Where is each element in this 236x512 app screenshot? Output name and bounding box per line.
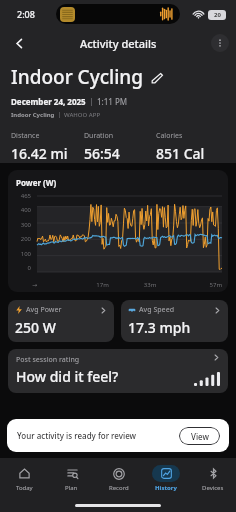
button[interactable]: History [142, 458, 189, 498]
staticText: Activity details [80, 36, 157, 51]
staticText: Post session rating [16, 355, 80, 365]
button[interactable]: Today [0, 458, 48, 498]
staticText: Distance [11, 131, 40, 141]
staticText: 2:08 [17, 8, 35, 20]
button[interactable]: Back [8, 32, 30, 54]
button[interactable]: Avg Power [8, 300, 114, 342]
staticText: Indoor Cycling [11, 111, 55, 119]
staticText: History [155, 484, 177, 492]
staticText: Devices [202, 484, 224, 492]
staticText: 33m [126, 281, 174, 289]
staticText: → [32, 281, 79, 288]
staticText: WAHOO APP [64, 111, 101, 119]
staticText: Power (W) [16, 177, 57, 188]
button[interactable]: Devices [189, 458, 236, 498]
button[interactable]: Edit title [148, 69, 165, 86]
staticText: Your activity is ready for review [17, 430, 137, 441]
staticText: Avg Power [26, 305, 62, 315]
staticText: Plan [65, 484, 78, 492]
staticText: 100 [13, 250, 31, 258]
staticText: View [191, 431, 209, 442]
staticText: 851 Cal [156, 144, 205, 163]
staticText: Avg Speed [139, 305, 174, 315]
staticText: 300 [13, 221, 31, 229]
staticText: 200 [13, 235, 31, 243]
staticText: December 24, 2025 [11, 96, 86, 107]
staticText: How did it feel? [16, 367, 119, 386]
staticText: 465 [13, 192, 31, 200]
staticText: 20 [214, 11, 221, 19]
staticText: 0 [13, 264, 31, 272]
staticText: 17.3 mph [128, 318, 191, 337]
staticText: 400 [13, 206, 31, 214]
button[interactable]: Post session rating [8, 349, 228, 393]
staticText: 56:54 [84, 144, 120, 163]
button[interactable]: Plan [48, 458, 95, 498]
button[interactable]: View [179, 427, 220, 445]
button[interactable]: Record [95, 458, 142, 498]
staticText: 16.42 mi [11, 144, 68, 163]
staticText: Calories [156, 131, 183, 141]
staticText: Duration [84, 131, 114, 141]
staticText: Record [109, 484, 129, 492]
button[interactable]: Power (W) [8, 170, 228, 292]
staticText: 250 W [15, 318, 56, 337]
staticText: 1:11 PM [97, 96, 128, 107]
button[interactable]: More options [211, 34, 229, 52]
staticText: 57m [174, 281, 222, 289]
staticText: 17m [79, 281, 126, 289]
staticText: Today [16, 484, 33, 492]
staticText: Indoor Cycling [11, 64, 143, 90]
button[interactable]: Avg Speed [121, 300, 228, 342]
